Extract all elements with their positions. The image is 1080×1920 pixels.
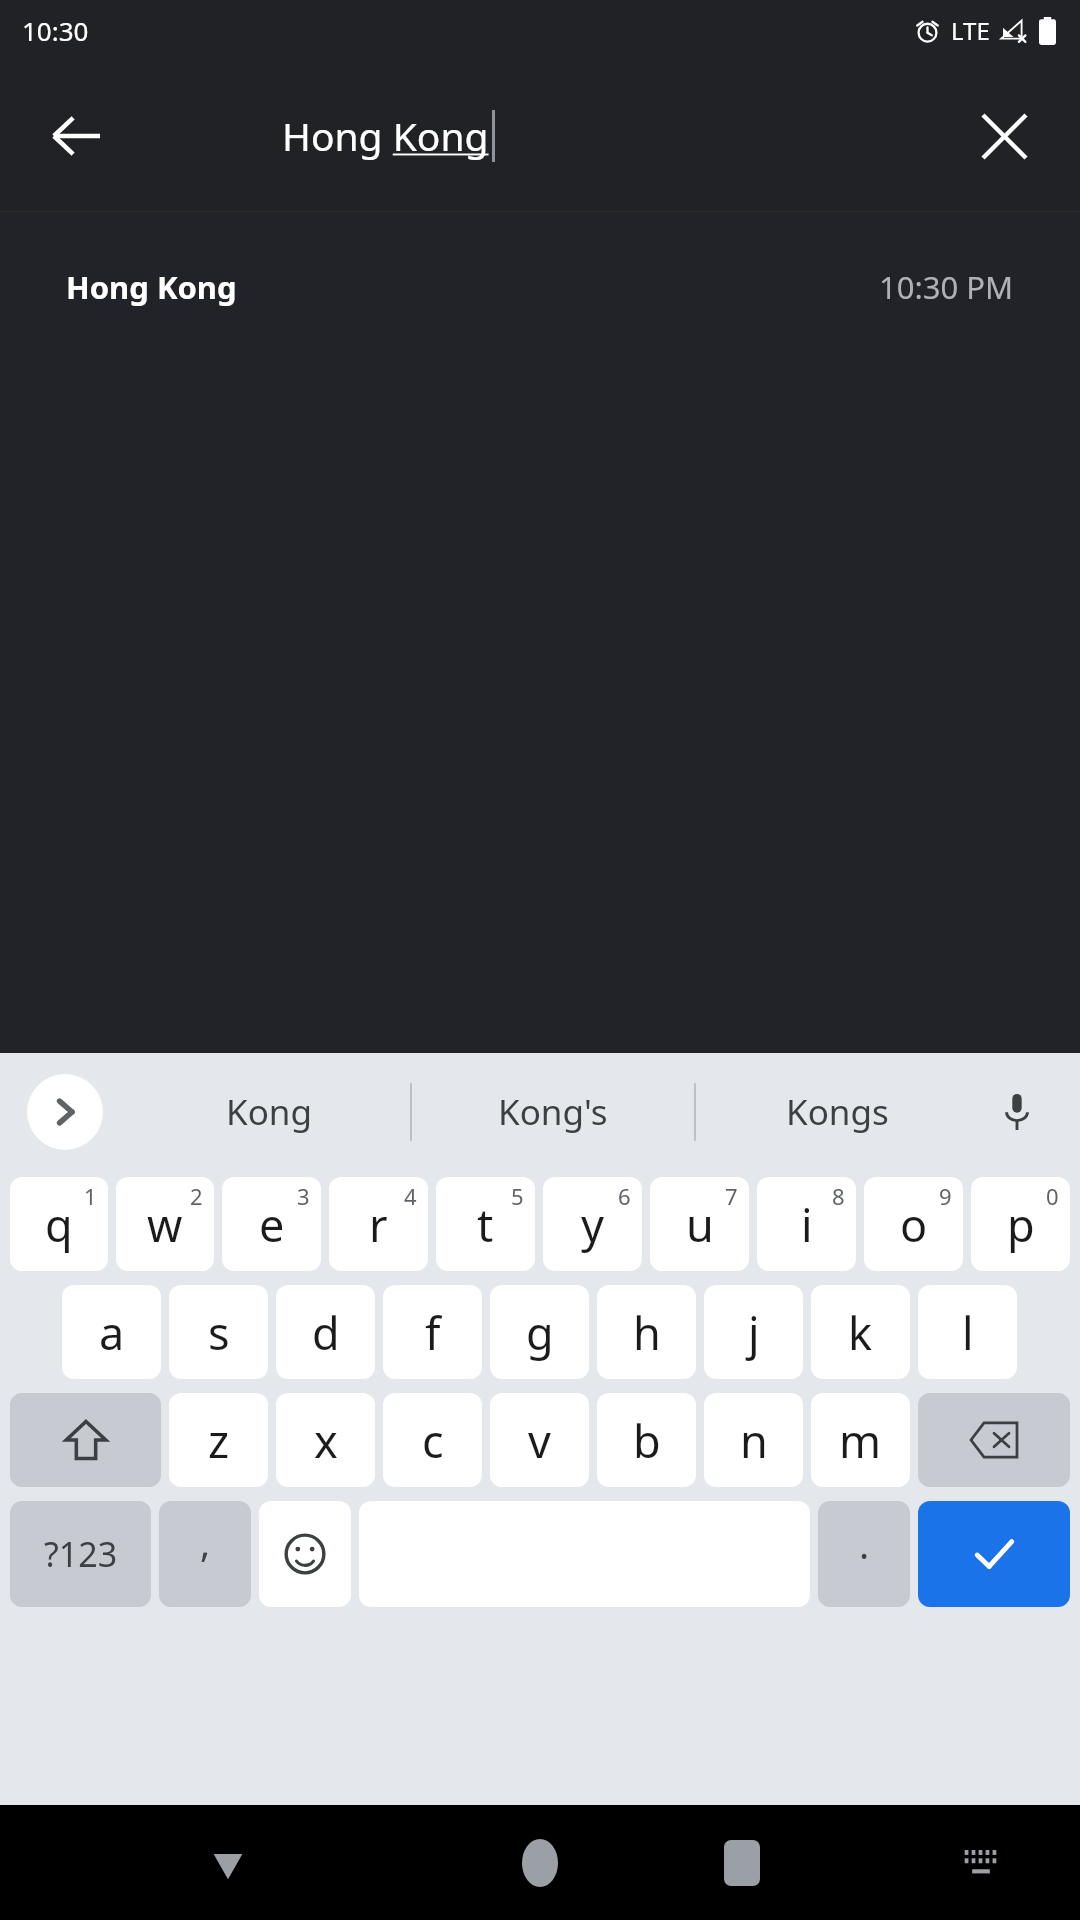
- button[interactable]: n: [704, 1393, 803, 1487]
- staticText: a: [99, 1302, 125, 1363]
- staticText: b: [633, 1410, 661, 1471]
- button[interactable]: s: [169, 1285, 268, 1379]
- button[interactable]: f: [383, 1285, 482, 1379]
- staticText: ?123: [44, 1531, 118, 1577]
- button[interactable]: Home: [494, 1817, 586, 1909]
- staticText: y: [581, 1194, 604, 1255]
- button[interactable]: Back: [182, 1817, 274, 1909]
- button[interactable]: Kong: [128, 1053, 410, 1171]
- staticText: i: [801, 1194, 813, 1255]
- staticText: k: [848, 1302, 873, 1363]
- button[interactable]: z: [169, 1393, 268, 1487]
- staticText: u: [686, 1194, 714, 1255]
- staticText: s: [208, 1302, 230, 1363]
- button[interactable]: Enter: [918, 1501, 1070, 1607]
- staticText: 9: [939, 1181, 952, 1211]
- button[interactable]: Hong Kong: [0, 212, 1080, 362]
- staticText: o: [900, 1194, 928, 1255]
- staticText: Hong Kong: [282, 109, 489, 162]
- staticText: g: [526, 1302, 554, 1363]
- button[interactable]: v: [490, 1393, 589, 1487]
- staticText: z: [208, 1410, 230, 1471]
- button[interactable]: w: [116, 1177, 214, 1271]
- staticText: v: [528, 1410, 551, 1471]
- button[interactable]: Kongs: [696, 1053, 978, 1171]
- button[interactable]: d: [276, 1285, 375, 1379]
- staticText: e: [259, 1194, 285, 1255]
- staticText: n: [740, 1410, 768, 1471]
- staticText: h: [633, 1302, 661, 1363]
- button[interactable]: p: [971, 1177, 1070, 1271]
- staticText: q: [45, 1194, 73, 1255]
- button[interactable]: r: [329, 1177, 428, 1271]
- staticText: x: [314, 1410, 338, 1471]
- staticText: d: [312, 1302, 340, 1363]
- button[interactable]: ,: [159, 1501, 251, 1607]
- staticText: 3: [297, 1181, 310, 1211]
- staticText: c: [422, 1410, 444, 1471]
- staticText: p: [1007, 1194, 1035, 1255]
- staticText: w: [147, 1194, 183, 1255]
- button[interactable]: ?123: [10, 1501, 151, 1607]
- button[interactable]: .: [818, 1501, 910, 1607]
- staticText: Kongs: [786, 1088, 889, 1136]
- staticText: 2: [190, 1181, 203, 1211]
- button[interactable]: k: [811, 1285, 910, 1379]
- button[interactable]: y: [543, 1177, 642, 1271]
- button[interactable]: u: [650, 1177, 749, 1271]
- button[interactable]: c: [383, 1393, 482, 1487]
- button[interactable]: o: [864, 1177, 963, 1271]
- button[interactable]: Back: [28, 88, 124, 184]
- button[interactable]: g: [490, 1285, 589, 1379]
- button[interactable]: Clear search: [956, 88, 1052, 184]
- staticText: l: [962, 1302, 974, 1363]
- staticText: t: [477, 1194, 494, 1255]
- staticText: 6: [618, 1181, 631, 1211]
- staticText: 10:30 PM: [879, 266, 1014, 308]
- staticText: 8: [832, 1181, 845, 1211]
- button[interactable]: Voice input: [980, 1075, 1054, 1149]
- button[interactable]: l: [918, 1285, 1017, 1379]
- button[interactable]: More suggestions: [27, 1074, 103, 1150]
- button[interactable]: i: [757, 1177, 856, 1271]
- staticText: Hong Kong: [66, 266, 237, 308]
- staticText: Kong's: [498, 1088, 608, 1136]
- staticText: 10:30: [22, 13, 89, 48]
- button[interactable]: x: [276, 1393, 375, 1487]
- button[interactable]: e: [222, 1177, 321, 1271]
- staticText: f: [425, 1302, 441, 1363]
- staticText: j: [748, 1302, 760, 1363]
- button[interactable]: j: [704, 1285, 803, 1379]
- staticText: 4: [404, 1181, 417, 1211]
- button[interactable]: Emoji: [259, 1501, 351, 1607]
- staticText: 7: [725, 1181, 738, 1211]
- staticText: r: [369, 1194, 388, 1255]
- staticText: 1: [84, 1181, 97, 1211]
- staticText: .: [859, 1518, 870, 1570]
- button[interactable]: t: [436, 1177, 535, 1271]
- button[interactable]: Backspace: [918, 1393, 1070, 1487]
- staticText: LTE: [951, 14, 990, 47]
- button[interactable]: Recents: [696, 1817, 788, 1909]
- button[interactable]: q: [10, 1177, 108, 1271]
- button[interactable]: h: [597, 1285, 696, 1379]
- staticText: ,: [200, 1516, 211, 1568]
- staticText: 5: [511, 1181, 524, 1211]
- staticText: Kong: [226, 1088, 312, 1136]
- button[interactable]: a: [62, 1285, 161, 1379]
- button[interactable]: Switch keyboard: [940, 1822, 1022, 1904]
- button[interactable]: m: [811, 1393, 910, 1487]
- button[interactable]: Shift: [10, 1393, 161, 1487]
- button[interactable]: Kong's: [412, 1053, 694, 1171]
- button[interactable]: b: [597, 1393, 696, 1487]
- staticText: m: [839, 1410, 882, 1471]
- staticText: 0: [1046, 1181, 1059, 1211]
